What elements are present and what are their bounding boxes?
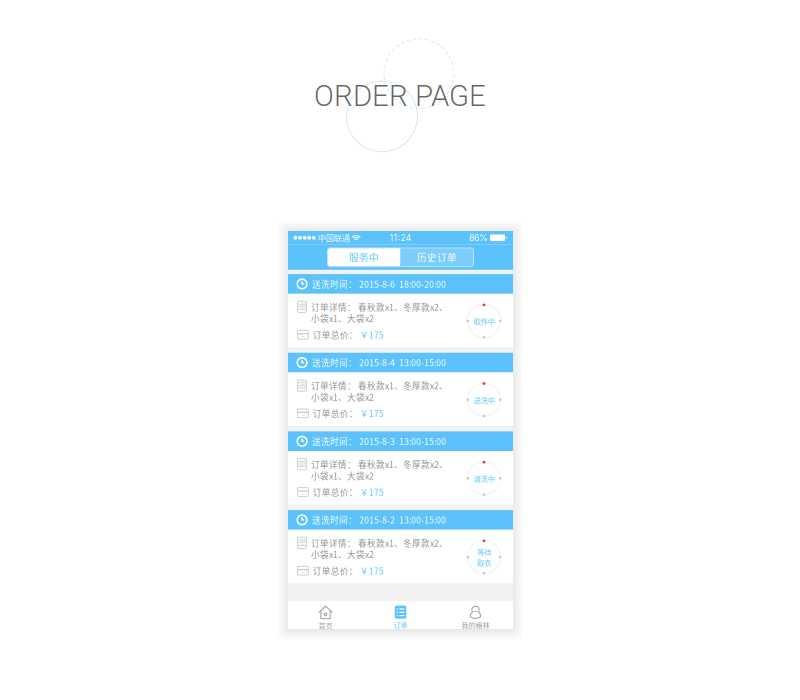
staticText: 小袋x1、大袋x2 xyxy=(311,469,374,482)
staticText: 订单详情： 春秋款x1、冬厚款x2、 xyxy=(311,458,448,470)
staticText: 送洗时间： 2015-8-2 13:00-15:00 xyxy=(312,514,446,526)
button[interactable]: 我的格林 xyxy=(438,601,513,629)
staticText: 中国联通 xyxy=(316,232,352,244)
staticText: ORDER PAGE xyxy=(314,79,486,113)
staticText: 历史订单 xyxy=(417,250,457,264)
button[interactable]: 服务中 xyxy=(327,248,400,266)
button[interactable]: 送洗时间： 2015-8-3 13:00-15:00 xyxy=(288,431,513,505)
staticText: 送洗时间： 2015-8-4 13:00-15:00 xyxy=(312,356,446,369)
staticText: 小袋x1、大袋x2 xyxy=(311,548,374,561)
staticText: 订单详情： 春秋款x1、冬厚款x2、 xyxy=(311,537,448,549)
staticText: ￥175 xyxy=(360,486,384,498)
staticText: 服务中 xyxy=(349,250,379,264)
button[interactable]: 送洗时间： 2015-8-4 13:00-15:00 xyxy=(288,353,513,426)
staticText: 取件中 xyxy=(473,316,494,326)
staticText: 订单总价： xyxy=(313,486,360,498)
staticText: 清洗中 xyxy=(473,473,494,484)
button[interactable]: 首页 xyxy=(288,601,363,629)
staticText: 小袋x1、大袋x2 xyxy=(311,312,374,325)
staticText: 86% xyxy=(469,232,490,243)
staticText: ￥175 xyxy=(360,407,384,420)
staticText: 首页 xyxy=(318,620,332,630)
staticText: 订单详情： 春秋款x1、冬厚款x2、 xyxy=(311,301,448,313)
staticText: 11:24 xyxy=(389,232,411,243)
staticText: 送洗时间： 2015-8-6 18:00-20:00 xyxy=(312,278,446,290)
staticText: 订单 xyxy=(393,620,407,630)
button[interactable]: 送洗时间： 2015-8-6 18:00-20:00 xyxy=(288,274,513,347)
staticText: 小袋x1、大袋x2 xyxy=(311,391,374,403)
staticText: 订单总价： xyxy=(313,564,360,577)
staticText: 取衣 xyxy=(477,557,491,568)
staticText: 等待 xyxy=(477,546,491,557)
staticText: ￥175 xyxy=(360,328,384,341)
staticText: 我的格林 xyxy=(461,620,489,630)
staticText: 送洗中 xyxy=(473,394,494,405)
button[interactable]: 送洗时间： 2015-8-2 13:00-15:00 xyxy=(288,510,513,583)
button[interactable]: 订单 xyxy=(363,601,438,629)
staticText: 订单总价： xyxy=(313,407,360,420)
staticText: 订单详情： 春秋款x1、冬厚款x2、 xyxy=(311,379,448,392)
staticText: 订单总价： xyxy=(313,328,360,341)
staticText: 送洗时间： 2015-8-3 13:00-15:00 xyxy=(312,435,446,447)
staticText: ￥175 xyxy=(360,564,384,577)
button[interactable]: 历史订单 xyxy=(400,248,473,266)
